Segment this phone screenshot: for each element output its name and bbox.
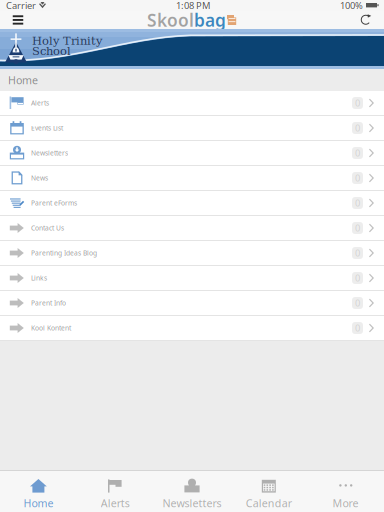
staticText: Alerts — [31, 99, 49, 107]
button[interactable]: Calendar — [230, 471, 307, 512]
staticText: Contact Us — [31, 224, 64, 232]
button[interactable]: Alerts — [0, 91, 384, 116]
staticText: 0 — [355, 197, 360, 209]
staticText: 0 — [355, 272, 360, 284]
button[interactable]: Alerts — [77, 471, 154, 512]
button[interactable]: Events List — [0, 116, 384, 141]
button[interactable]: Refresh — [348, 11, 384, 29]
button[interactable]: Newsletters — [0, 141, 384, 166]
button[interactable]: News — [0, 166, 384, 191]
button[interactable]: Contact Us — [0, 216, 384, 241]
staticText: Carrier — [6, 0, 36, 12]
staticText: Holy Trinity — [32, 34, 102, 47]
staticText: bag — [194, 8, 226, 31]
button[interactable]: Parent eForms — [0, 191, 384, 216]
staticText: 0 — [355, 172, 360, 184]
button[interactable]: Parenting Ideas Blog — [0, 241, 384, 266]
staticText: 0 — [355, 247, 360, 259]
button[interactable]: Newsletters — [154, 471, 230, 512]
button[interactable]: Menu — [0, 11, 36, 29]
staticText: 0 — [355, 222, 360, 234]
staticText: Newsletters — [31, 149, 68, 157]
staticText: Events List — [31, 124, 63, 132]
staticText: Links — [31, 274, 47, 282]
staticText: Newsletters — [162, 496, 221, 510]
staticText: News — [31, 174, 48, 182]
staticText: Parenting Ideas Blog — [31, 249, 97, 257]
button[interactable]: More — [307, 471, 384, 512]
staticText: 0 — [355, 147, 360, 159]
staticText: Home — [8, 73, 38, 87]
button[interactable]: Links — [0, 266, 384, 291]
staticText: 0 — [355, 97, 360, 109]
staticText: Skool — [147, 8, 194, 31]
staticText: 1:08 PM — [176, 0, 210, 12]
staticText: School — [32, 44, 71, 58]
staticText: Home — [23, 496, 53, 510]
staticText: 0 — [355, 122, 360, 134]
button[interactable]: Home — [0, 471, 77, 512]
staticText: Kool Kontent — [31, 324, 71, 332]
staticText: More — [333, 496, 359, 510]
button[interactable]: Parent Info — [0, 291, 384, 316]
staticText: Alerts — [101, 496, 130, 510]
staticText: 0 — [355, 322, 360, 334]
staticText: Parent Info — [31, 299, 66, 307]
staticText: 0 — [355, 297, 360, 309]
staticText: Calendar — [246, 496, 292, 510]
staticText: 100% — [340, 0, 363, 12]
staticText: Parent eForms — [31, 199, 77, 207]
button[interactable]: Kool Kontent — [0, 316, 384, 341]
